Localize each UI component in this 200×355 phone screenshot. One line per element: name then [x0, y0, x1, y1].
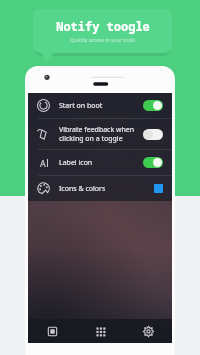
staticText: Start on boot [59, 101, 137, 111]
staticText: Vibrate feedback when clicking on a togg… [59, 125, 137, 143]
staticText: Quickly access to your tools [70, 37, 135, 44]
staticText: Notify toogle [56, 18, 150, 34]
button[interactable]: Start on boot [28, 93, 172, 118]
button[interactable]: Overview [28, 319, 76, 343]
button[interactable]: Apps [76, 319, 124, 343]
button[interactable]: A [28, 150, 172, 175]
button[interactable]: Off [143, 129, 163, 140]
staticText: Label icon [59, 158, 137, 168]
button[interactable]: Icons & colors [28, 176, 172, 201]
button[interactable]: Vibrate feedback when clicking on a togg… [28, 119, 172, 149]
staticText: Icons & colors [59, 184, 148, 194]
button[interactable]: On [143, 157, 163, 168]
button[interactable]: Settings [124, 319, 172, 343]
staticText: A [40, 157, 46, 169]
button[interactable]: On [143, 100, 163, 111]
